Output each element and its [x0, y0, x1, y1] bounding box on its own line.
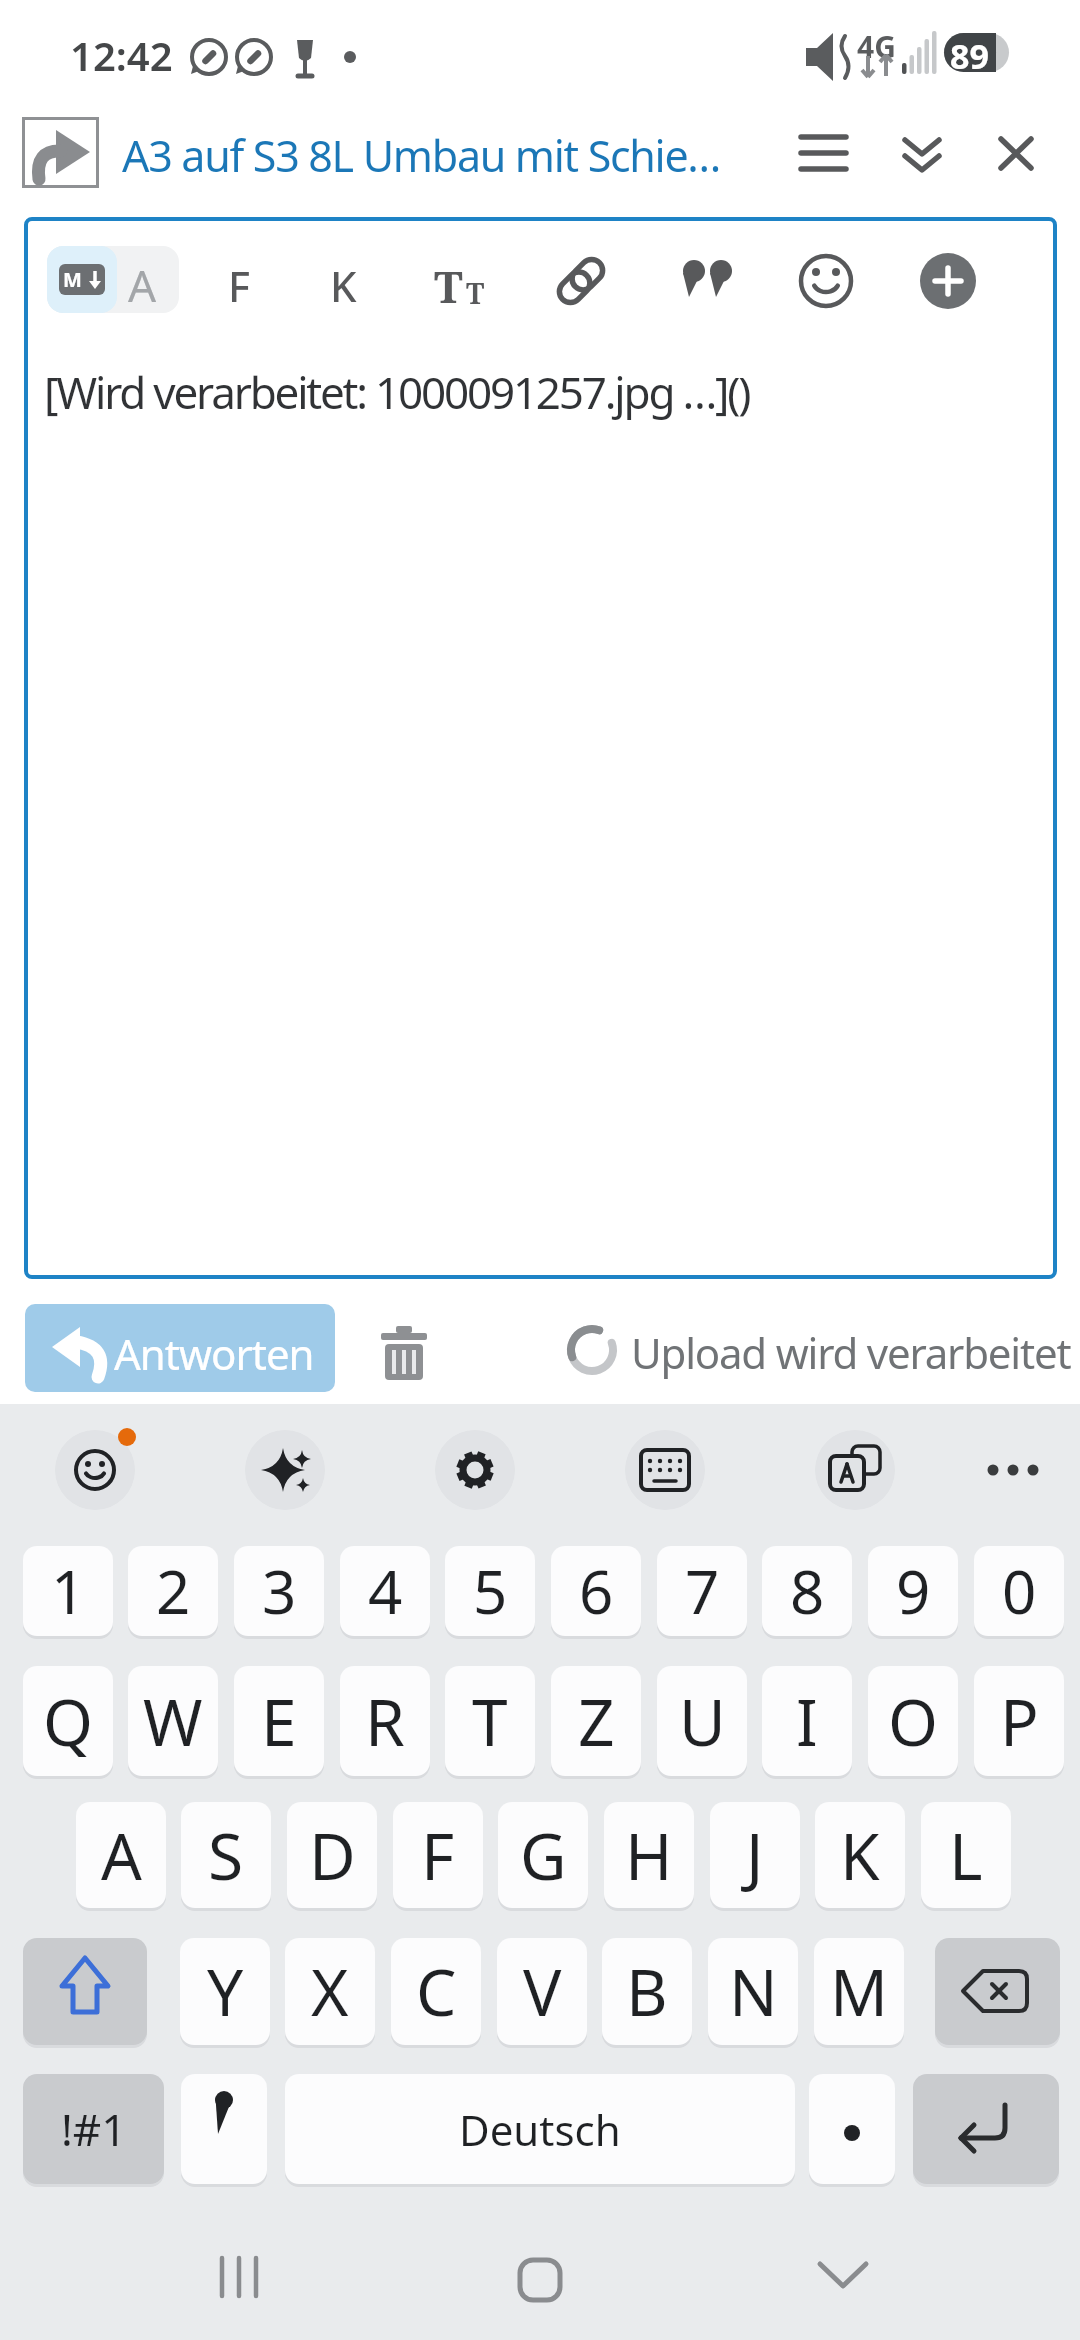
- staticText: [Wird verarbeitet: 1000091257.jpg …](): [44, 362, 750, 422]
- button[interactable]: M: [814, 1938, 904, 2045]
- button[interactable]: [435, 1430, 515, 1510]
- button[interactable]: [370, 1318, 436, 1384]
- staticText: N: [729, 1948, 778, 2035]
- staticText: U: [679, 1678, 726, 1765]
- button[interactable]: 4: [340, 1546, 430, 1636]
- staticText: O: [888, 1678, 938, 1765]
- button[interactable]: Q: [23, 1666, 113, 1776]
- staticText: S: [208, 1812, 244, 1899]
- staticText: D: [309, 1812, 356, 1899]
- button[interactable]: 6: [551, 1546, 641, 1636]
- button[interactable]: [47, 246, 179, 313]
- button[interactable]: [800, 2240, 880, 2320]
- button[interactable]: G: [498, 1802, 588, 1908]
- button[interactable]: Y: [180, 1938, 270, 2045]
- staticText: 0: [1002, 1550, 1037, 1632]
- button[interactable]: 1: [23, 1546, 113, 1636]
- staticText: 5: [473, 1550, 508, 1632]
- button[interactable]: 0: [974, 1546, 1064, 1636]
- button[interactable]: [25, 1304, 335, 1392]
- staticText: Antworten: [114, 1325, 314, 1382]
- button[interactable]: [625, 1430, 705, 1510]
- button[interactable]: R: [340, 1666, 430, 1776]
- button[interactable]: B: [602, 1938, 692, 2045]
- button[interactable]: D: [287, 1802, 377, 1908]
- button[interactable]: [793, 248, 859, 314]
- button[interactable]: [120, 120, 720, 184]
- button[interactable]: [47, 246, 117, 313]
- staticText: C: [416, 1948, 457, 2035]
- button[interactable]: [975, 1440, 1055, 1500]
- button[interactable]: X: [285, 1938, 375, 2045]
- button[interactable]: [815, 1430, 895, 1510]
- button[interactable]: !#1: [23, 2074, 164, 2184]
- button[interactable]: [245, 1430, 325, 1510]
- button[interactable]: [209, 248, 275, 314]
- button[interactable]: [935, 1938, 1060, 2045]
- button[interactable]: F: [393, 1802, 483, 1908]
- staticText: A: [101, 1812, 142, 1899]
- button[interactable]: 3: [234, 1546, 324, 1636]
- button[interactable]: O: [868, 1666, 958, 1776]
- staticText: F: [228, 257, 251, 314]
- staticText: 12:42: [70, 28, 173, 82]
- button[interactable]: T: [445, 1666, 535, 1776]
- button[interactable]: H: [604, 1802, 694, 1908]
- staticText: H: [625, 1812, 673, 1899]
- staticText: A: [128, 255, 157, 315]
- button[interactable]: C: [391, 1938, 481, 2045]
- staticText: 4G: [857, 26, 896, 67]
- button[interactable]: [895, 125, 951, 191]
- button[interactable]: S: [181, 1802, 271, 1908]
- staticText: F: [421, 1812, 455, 1899]
- staticText: 4: [368, 1550, 403, 1632]
- staticText: E: [261, 1678, 297, 1765]
- button[interactable]: L: [921, 1802, 1011, 1908]
- button[interactable]: [314, 248, 380, 314]
- button[interactable]: [672, 248, 738, 314]
- button[interactable]: [181, 2074, 267, 2184]
- button[interactable]: W: [128, 1666, 218, 1776]
- staticText: 2: [156, 1550, 191, 1632]
- staticText: Q: [43, 1678, 93, 1765]
- button[interactable]: J: [710, 1802, 800, 1908]
- button[interactable]: [990, 125, 1046, 181]
- button[interactable]: [500, 2240, 580, 2320]
- button[interactable]: N: [708, 1938, 798, 2045]
- button[interactable]: Deutsch: [285, 2074, 795, 2184]
- button[interactable]: [915, 248, 981, 314]
- button[interactable]: Z: [551, 1666, 641, 1776]
- staticText: 3: [262, 1550, 297, 1632]
- button[interactable]: [548, 248, 614, 314]
- button[interactable]: V: [497, 1938, 587, 2045]
- button[interactable]: [200, 2240, 280, 2320]
- button[interactable]: [23, 1938, 147, 2045]
- button[interactable]: [24, 330, 1057, 1279]
- staticText: R: [365, 1678, 405, 1765]
- button[interactable]: [55, 1430, 135, 1510]
- staticText: M: [63, 266, 82, 293]
- button[interactable]: 9: [868, 1546, 958, 1636]
- staticText: W: [143, 1678, 203, 1765]
- button[interactable]: 8: [762, 1546, 852, 1636]
- staticText: 89: [950, 33, 989, 79]
- button[interactable]: [432, 248, 498, 314]
- button[interactable]: [809, 2074, 895, 2184]
- button[interactable]: K: [815, 1802, 905, 1908]
- button[interactable]: [22, 117, 99, 188]
- button[interactable]: U: [657, 1666, 747, 1776]
- button[interactable]: [913, 2074, 1059, 2184]
- staticText: Upload wird verarbeitet: [631, 1324, 1071, 1381]
- staticText: Deutsch: [459, 2101, 621, 2158]
- button[interactable]: E: [234, 1666, 324, 1776]
- button[interactable]: I: [762, 1666, 852, 1776]
- button[interactable]: A: [76, 1802, 166, 1908]
- staticText: 7: [685, 1550, 720, 1632]
- button[interactable]: [790, 125, 856, 181]
- button[interactable]: 2: [128, 1546, 218, 1636]
- staticText: G: [520, 1812, 567, 1899]
- staticText: 8: [790, 1550, 825, 1632]
- button[interactable]: P: [974, 1666, 1064, 1776]
- button[interactable]: 5: [445, 1546, 535, 1636]
- button[interactable]: 7: [657, 1546, 747, 1636]
